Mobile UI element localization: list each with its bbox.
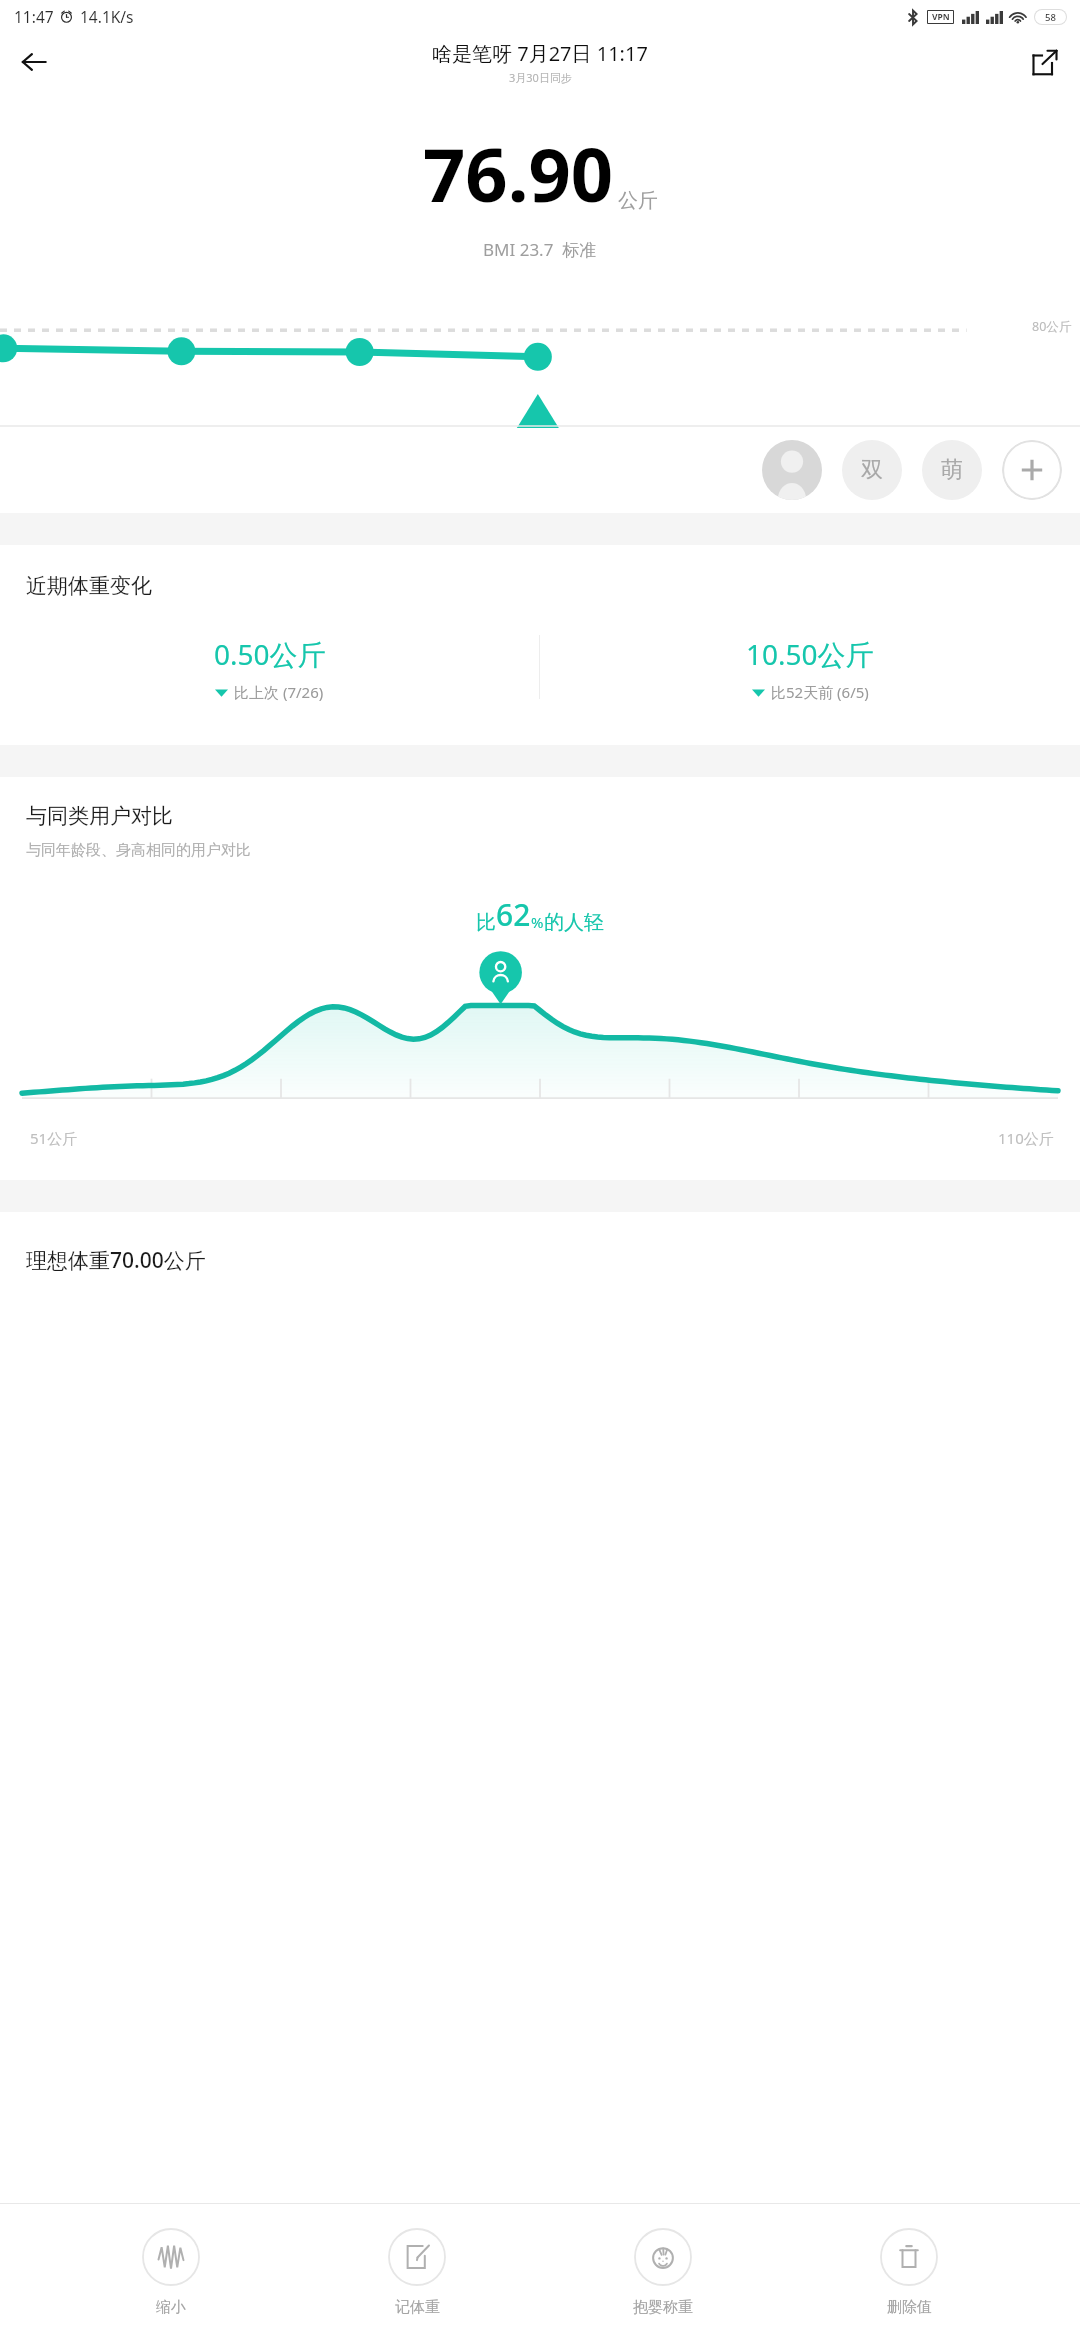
staticText: 10.50公斤 bbox=[746, 635, 874, 673]
button[interactable]: 萌 bbox=[922, 440, 982, 500]
staticText: 比 bbox=[476, 910, 496, 935]
staticText: 0.50公斤 bbox=[214, 635, 326, 673]
staticText: BMI 23.7 标准 bbox=[483, 238, 597, 261]
staticText: 比上次 (7/26) bbox=[234, 682, 324, 702]
staticText: 记体重 bbox=[395, 2298, 440, 2317]
staticText: 62 bbox=[496, 894, 531, 935]
button[interactable]: 0.50公斤 bbox=[0, 635, 539, 702]
staticText: 公斤 bbox=[618, 188, 658, 213]
button[interactable]: 记体重 bbox=[342, 2228, 492, 2317]
staticText: 3月30日同步 bbox=[509, 70, 572, 85]
staticText: 与同年龄段、身高相同的用户对比 bbox=[26, 841, 251, 860]
staticText: 80公斤 bbox=[1032, 318, 1072, 335]
button[interactable]: 添加用户 bbox=[1002, 440, 1062, 500]
staticText: 11:47 bbox=[14, 6, 54, 27]
staticText: 缩小 bbox=[156, 2298, 186, 2317]
staticText: 萌 bbox=[941, 456, 963, 484]
staticText: 的人轻 bbox=[544, 910, 604, 935]
staticText: 与同类用户对比 bbox=[26, 803, 173, 829]
button[interactable]: 删除值 bbox=[834, 2228, 984, 2317]
staticText: 双 bbox=[861, 456, 883, 484]
button[interactable]: 10.50公斤 bbox=[540, 635, 1080, 702]
staticText: 理想体重70.00公斤 bbox=[26, 1246, 206, 1275]
staticText: % bbox=[531, 912, 544, 932]
button[interactable]: 当前用户 bbox=[762, 440, 822, 500]
staticText: 76.90 bbox=[423, 123, 614, 224]
staticText: VPN bbox=[932, 11, 950, 23]
button[interactable]: 双 bbox=[842, 440, 902, 500]
staticText: 啥是笔呀 7月27日 11:17 bbox=[432, 40, 648, 67]
staticText: 比52天前 (6/5) bbox=[771, 682, 869, 702]
button[interactable]: Back bbox=[8, 36, 60, 88]
staticText: 近期体重变化 bbox=[26, 573, 152, 599]
button[interactable]: 理想体重70.00公斤 bbox=[0, 1212, 1080, 1308]
staticText: 抱婴称重 bbox=[633, 2298, 693, 2317]
button[interactable]: Share bbox=[1018, 36, 1070, 88]
staticText: 58 bbox=[1045, 11, 1056, 24]
button[interactable]: 缩小 bbox=[96, 2228, 246, 2317]
staticText: 删除值 bbox=[887, 2298, 932, 2317]
staticText: 51公斤 bbox=[30, 1128, 78, 1148]
button[interactable]: 抱婴称重 bbox=[588, 2228, 738, 2317]
staticText: 14.1K/s bbox=[80, 6, 134, 27]
staticText: 110公斤 bbox=[998, 1128, 1054, 1148]
